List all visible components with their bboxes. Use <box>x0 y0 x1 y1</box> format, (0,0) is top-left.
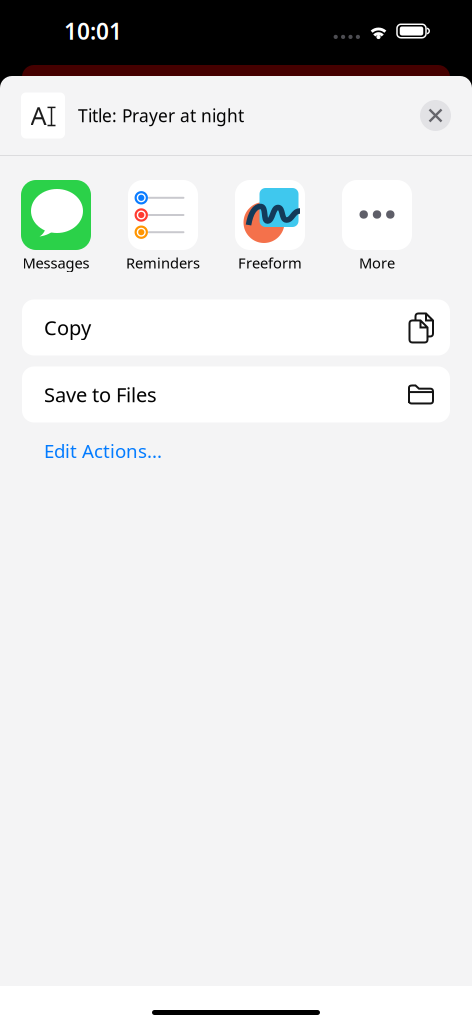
staticText: Title: Prayer at night <box>78 104 244 127</box>
staticText: Freeform <box>238 253 302 272</box>
staticText: Messages <box>22 253 89 272</box>
button[interactable]: More <box>333 180 420 272</box>
staticText: Reminders <box>126 253 200 272</box>
staticText: 10:01 <box>64 16 122 46</box>
staticText: A <box>30 99 46 132</box>
button[interactable]: Close <box>420 100 451 131</box>
staticText: Edit Actions... <box>44 438 162 463</box>
button[interactable]: Freeform <box>226 180 313 272</box>
staticText: More <box>359 253 395 272</box>
staticText: Copy <box>44 314 91 341</box>
button[interactable]: Messages <box>12 180 99 272</box>
staticText: Save to Files <box>44 381 157 408</box>
button[interactable]: Copy <box>22 299 450 355</box>
button[interactable]: Edit Actions... <box>0 422 472 475</box>
button[interactable]: Save to Files <box>22 366 450 422</box>
button[interactable]: Reminders <box>119 180 206 272</box>
